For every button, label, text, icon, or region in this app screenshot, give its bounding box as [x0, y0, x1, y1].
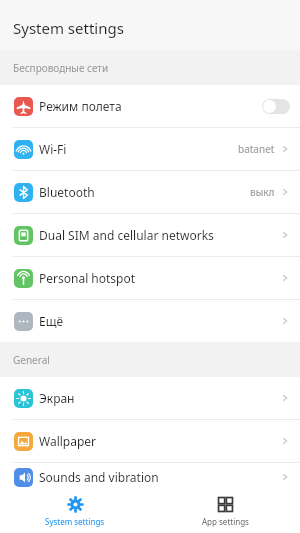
button[interactable]: Режим полета	[0, 85, 300, 128]
button[interactable]: Wallpaper	[0, 420, 300, 463]
staticText: Режим полета	[39, 98, 262, 114]
button[interactable]: System settings	[0, 490, 150, 533]
staticText: Dual SIM and cellular networks	[39, 227, 280, 243]
staticText: выкл	[250, 185, 275, 199]
button[interactable]: Bluetooth	[0, 171, 300, 214]
staticText: Экран	[39, 390, 280, 406]
button[interactable]: Dual SIM and cellular networks	[0, 214, 300, 257]
button[interactable]: Экран	[0, 377, 300, 420]
button[interactable]: Wi-Fi	[0, 128, 300, 171]
button[interactable]: Ещё	[0, 300, 300, 342]
other: System settings	[67, 496, 84, 513]
staticText: Ещё	[39, 313, 280, 329]
staticText: Personal hotspot	[39, 270, 280, 286]
staticText: Wallpaper	[39, 433, 280, 449]
staticText: Bluetooth	[39, 184, 250, 200]
staticText: Беспроводные сети	[13, 61, 109, 75]
staticText: Sounds and vibration	[39, 469, 280, 485]
button[interactable]: App settings	[150, 490, 300, 533]
staticText: System settings	[45, 516, 105, 527]
staticText: batanet	[238, 142, 275, 156]
button[interactable]: Sounds and vibration	[0, 463, 300, 490]
button[interactable]: Personal hotspot	[0, 257, 300, 300]
staticText: System settings	[13, 18, 124, 38]
other: App settings	[217, 496, 234, 513]
staticText: Wi-Fi	[39, 141, 238, 157]
staticText: General	[13, 353, 50, 367]
staticText: App settings	[202, 516, 249, 527]
